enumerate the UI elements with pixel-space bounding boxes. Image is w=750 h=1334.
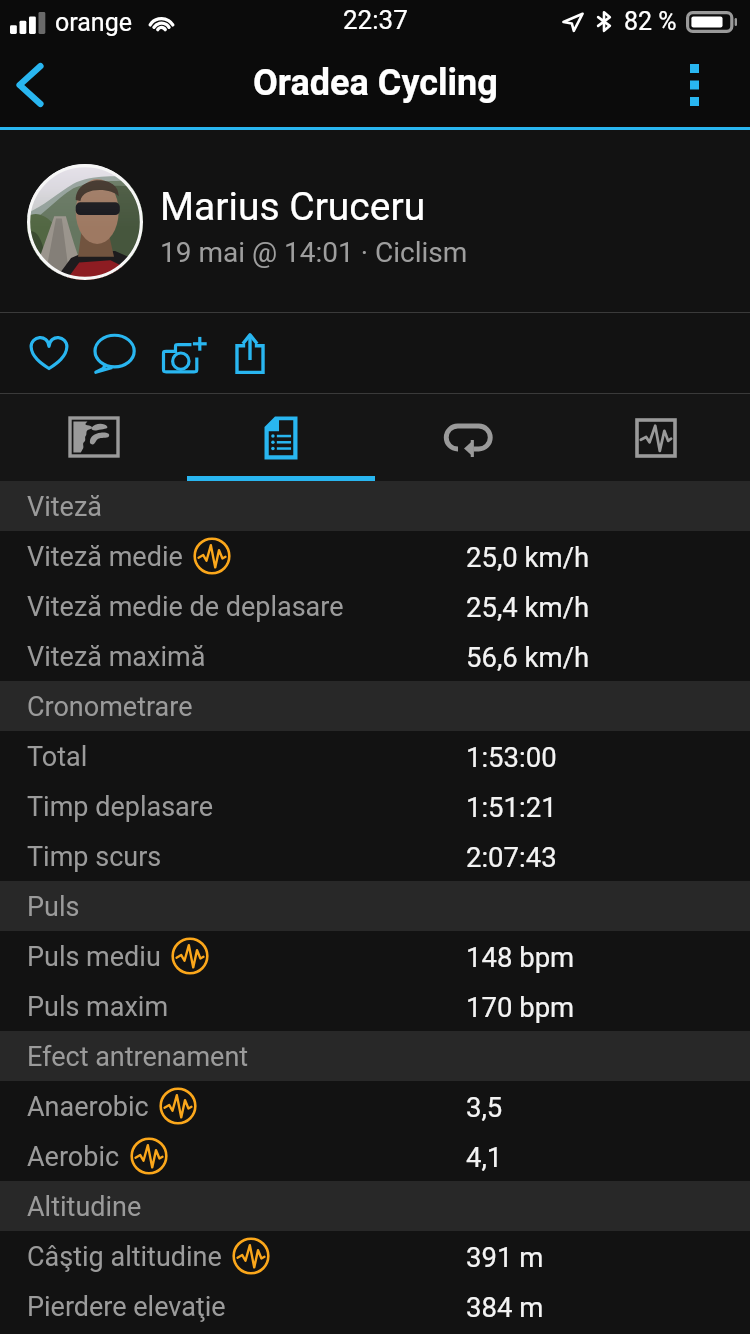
staticText: 3,5 xyxy=(466,1091,503,1123)
staticText: 170 bpm xyxy=(466,991,575,1023)
staticText: Total xyxy=(27,741,88,773)
button[interactable]: Laps xyxy=(374,394,562,481)
staticText: 25,0 km/h xyxy=(466,541,590,573)
button[interactable]: Viteză maximă xyxy=(0,631,750,681)
button[interactable]: Comment xyxy=(88,319,144,375)
button[interactable]: Profile photo xyxy=(0,130,750,313)
other: Profile photo xyxy=(27,164,143,280)
button[interactable]: Details xyxy=(187,394,374,481)
staticText: Puls maxim xyxy=(27,991,169,1023)
staticText: 19 mai @ 14:01 · Ciclism xyxy=(160,236,468,269)
staticText: Puls mediu xyxy=(27,941,161,973)
staticText: 384 m xyxy=(466,1291,544,1323)
staticText: Efect antrenament xyxy=(27,1041,249,1073)
button[interactable]: Back xyxy=(0,44,60,127)
button[interactable]: Timp scurs xyxy=(0,831,750,881)
staticText: Câştig altitudine xyxy=(27,1241,222,1273)
button[interactable]: Map xyxy=(0,394,187,481)
button[interactable]: Puls mediu xyxy=(0,931,750,981)
staticText: 22:37 xyxy=(343,5,408,35)
staticText: 1:51:21 xyxy=(466,791,557,823)
staticText: Cronometrare xyxy=(27,691,193,723)
button[interactable]: Anaerobic xyxy=(0,1081,750,1131)
staticText: Viteză medie de deplasare xyxy=(27,591,344,623)
staticText: Pierdere elevaţie xyxy=(27,1291,226,1323)
staticText: Viteză medie xyxy=(27,541,183,573)
staticText: orange xyxy=(55,8,132,37)
staticText: Puls xyxy=(27,891,80,923)
button[interactable]: Câştig altitudine xyxy=(0,1231,750,1281)
staticText: 56,6 km/h xyxy=(466,641,590,673)
button[interactable]: More options xyxy=(638,44,750,127)
button[interactable]: Aerobic xyxy=(0,1131,750,1181)
staticText: 82 % xyxy=(624,7,677,36)
button[interactable]: Viteză medie de deplasare xyxy=(0,581,750,631)
staticText: 2:07:43 xyxy=(466,841,557,873)
button[interactable]: Viteză medie xyxy=(0,531,750,581)
button[interactable]: Share xyxy=(229,327,271,383)
staticText: 1:53:00 xyxy=(466,741,557,773)
staticText: Viteză maximă xyxy=(27,641,206,673)
button[interactable]: Timp deplasare xyxy=(0,781,750,831)
staticText: 391 m xyxy=(466,1241,544,1273)
staticText: Timp scurs xyxy=(27,841,162,873)
staticText: Viteză xyxy=(27,491,102,523)
button[interactable]: Total xyxy=(0,731,750,781)
staticText: Altitudine xyxy=(27,1191,142,1223)
staticText: Aerobic xyxy=(27,1141,120,1173)
button[interactable]: Puls maxim xyxy=(0,981,750,1031)
staticText: 4,1 xyxy=(466,1141,503,1173)
button[interactable]: Add photo xyxy=(153,320,213,376)
staticText: 25,4 km/h xyxy=(466,591,590,623)
staticText: Oradea Cycling xyxy=(253,62,498,104)
staticText: Marius Cruceru xyxy=(160,184,426,230)
staticText: Anaerobic xyxy=(27,1091,149,1123)
staticText: 148 bpm xyxy=(466,941,575,973)
staticText: Timp deplasare xyxy=(27,791,214,823)
button[interactable]: Charts xyxy=(562,394,750,481)
button[interactable]: Like xyxy=(21,324,77,380)
button[interactable]: Pierdere elevaţie xyxy=(0,1281,750,1331)
